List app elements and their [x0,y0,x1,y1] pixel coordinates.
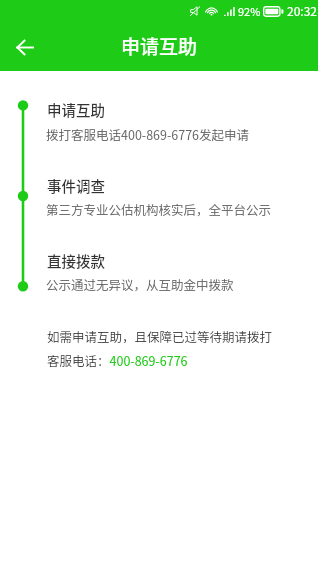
staticText: 第三方专业公估机构核实后，全平台公示 [46,200,272,218]
staticText: 事件调查 [47,175,105,196]
staticText: 20:32 [287,2,317,19]
staticText: 如需申请互助，且保障已过等待期请拨打 [47,327,273,345]
staticText: 申请互助 [121,32,198,60]
staticText: 拨打客服电话400-869-6776发起申请 [46,125,250,143]
staticText: 公示通过无异议，从互助金中拨款 [46,275,234,293]
staticText: 直接拨款 [47,250,105,271]
button[interactable]: 客服电话：400-869-6776 [47,351,188,369]
button[interactable]: Back [5,27,45,67]
staticText: 申请互助 [47,99,105,120]
staticText: 92% [238,3,261,19]
